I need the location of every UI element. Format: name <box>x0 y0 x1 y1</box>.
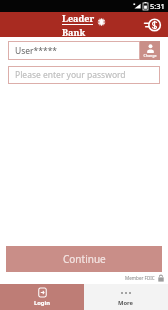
button[interactable]: Leader Bank <box>62 12 107 37</box>
button[interactable]: Login <box>0 284 84 310</box>
staticText: Bank <box>62 26 86 37</box>
button[interactable]: User***** <box>8 41 140 60</box>
staticText: Login <box>34 299 51 307</box>
staticText: Leader <box>62 12 95 24</box>
button[interactable]: Change user <box>140 41 160 60</box>
staticText: Continue <box>63 252 106 266</box>
staticText: Change <box>143 53 157 58</box>
staticText: Please enter your password <box>15 69 126 81</box>
button[interactable]: Continue <box>6 246 162 272</box>
button[interactable]: Find ATM <box>143 15 163 35</box>
staticText: More <box>118 299 134 307</box>
staticText: Member FDIC <box>125 275 155 281</box>
staticText: User***** <box>15 45 58 57</box>
button[interactable]: More <box>84 284 168 310</box>
button[interactable]: Please enter your password <box>8 66 160 84</box>
staticText: 5:31 <box>150 1 165 11</box>
